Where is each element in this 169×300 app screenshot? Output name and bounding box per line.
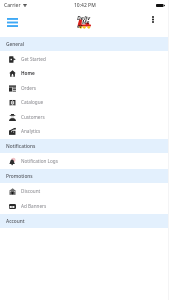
- staticText: Promotions: [6, 173, 33, 180]
- button[interactable]: Analytics: [0, 124, 169, 138]
- staticText: Account: [6, 218, 25, 225]
- button[interactable]: Home: [0, 66, 169, 80]
- staticText: Me: [82, 18, 90, 25]
- staticText: Customers: [21, 114, 45, 120]
- staticText: Notifications: [6, 143, 36, 150]
- staticText: General: [6, 41, 24, 48]
- button[interactable]: Catalogue: [0, 95, 169, 109]
- button[interactable]: Customers: [0, 110, 169, 124]
- staticText: Notification Logs: [21, 158, 58, 164]
- staticText: Deliver: [77, 14, 93, 29]
- staticText: Analytics: [21, 128, 41, 134]
- staticText: 10:42 PM: [74, 2, 96, 9]
- staticText: Catalogue: [21, 99, 44, 105]
- button[interactable]: Open navigation menu: [3, 13, 21, 31]
- button[interactable]: More options: [146, 12, 160, 26]
- button[interactable]: Notification Logs: [0, 154, 169, 168]
- staticText: Carrier: [4, 2, 21, 9]
- staticText: Ad Banners: [21, 203, 47, 209]
- button[interactable]: Discount: [0, 184, 169, 198]
- staticText: Orders: [21, 85, 37, 91]
- button[interactable]: Ad Banners: [0, 199, 169, 213]
- button[interactable]: Orders: [0, 81, 169, 95]
- staticText: Home: [21, 70, 35, 76]
- staticText: Discount: [21, 188, 41, 194]
- staticText: Get Started: [21, 56, 46, 62]
- button[interactable]: Get Started: [0, 52, 169, 66]
